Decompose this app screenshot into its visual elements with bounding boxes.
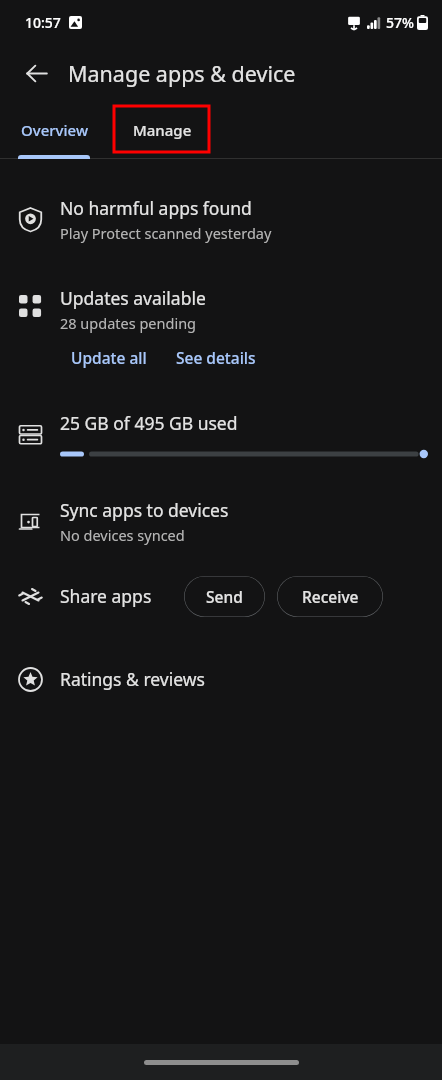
staticText: Share apps xyxy=(60,584,152,608)
staticText: Ratings & reviews xyxy=(60,667,205,691)
button[interactable]: 25 GB of 495 GB used xyxy=(0,401,442,467)
staticText: Receive xyxy=(302,586,359,607)
staticText: 28 updates pending xyxy=(60,313,197,333)
staticText: Manage xyxy=(133,120,192,140)
button[interactable]: Send xyxy=(184,576,265,617)
button[interactable]: Back xyxy=(13,50,59,96)
staticText: Update all xyxy=(71,347,147,368)
button[interactable]: Overview xyxy=(0,102,108,158)
staticText: No devices synced xyxy=(60,525,185,545)
staticText: Send xyxy=(206,586,243,607)
staticText: Sync apps to devices xyxy=(60,498,229,522)
staticText: No harmful apps found xyxy=(60,196,252,220)
staticText: See details xyxy=(176,347,256,368)
button[interactable]: No harmful apps found xyxy=(0,184,442,254)
button[interactable]: Receive xyxy=(277,576,383,617)
staticText: Play Protect scanned yesterday xyxy=(60,223,272,243)
staticText: Overview xyxy=(21,120,88,140)
button[interactable]: Sync apps to devices xyxy=(0,487,442,555)
button[interactable]: See details xyxy=(176,337,256,377)
button[interactable]: Manage xyxy=(108,102,216,158)
staticText: 25 GB of 495 GB used xyxy=(60,411,238,435)
button[interactable]: Update all xyxy=(71,337,147,377)
staticText: 10:57 xyxy=(25,13,61,32)
staticText: 57% xyxy=(386,13,414,32)
staticText: Updates available xyxy=(60,286,206,310)
button[interactable]: Ratings & reviews xyxy=(0,651,442,707)
staticText: Manage apps & device xyxy=(68,59,296,88)
